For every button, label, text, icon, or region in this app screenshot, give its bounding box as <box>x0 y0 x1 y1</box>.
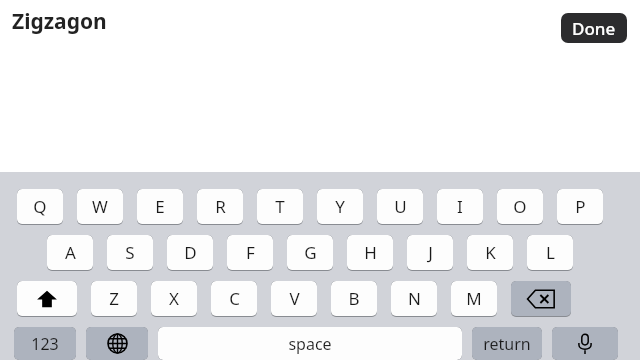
button[interactable]: R <box>197 189 243 225</box>
staticText: Y <box>335 195 345 218</box>
staticText: A <box>65 241 76 264</box>
staticText: J <box>428 241 433 264</box>
button[interactable]: F <box>227 235 273 271</box>
staticText: L <box>546 241 555 264</box>
staticText: M <box>466 287 482 310</box>
button[interactable]: U <box>377 189 423 225</box>
button[interactable]: Change keyboard <box>86 327 148 360</box>
button[interactable]: space <box>158 327 462 360</box>
button[interactable]: D <box>167 235 213 271</box>
button[interactable]: Shift <box>17 281 77 317</box>
staticText: P <box>575 195 586 218</box>
button[interactable]: return <box>472 327 542 360</box>
staticText: O <box>513 195 527 218</box>
button[interactable]: N <box>391 281 437 317</box>
button[interactable]: G <box>287 235 333 271</box>
staticText: space <box>288 333 332 355</box>
staticText: Done <box>572 17 616 40</box>
staticText: U <box>394 195 407 218</box>
staticText: 123 <box>31 333 59 355</box>
button[interactable]: O <box>497 189 543 225</box>
staticText: V <box>289 287 300 310</box>
staticText: H <box>364 241 377 264</box>
staticText: T <box>275 195 285 218</box>
staticText: Z <box>109 287 119 310</box>
staticText: S <box>125 241 135 264</box>
staticText: R <box>215 195 226 218</box>
staticText: return <box>483 333 531 355</box>
button[interactable]: A <box>47 235 93 271</box>
button[interactable]: X <box>151 281 197 317</box>
button[interactable]: B <box>331 281 377 317</box>
staticText: Zigzagon <box>12 7 107 36</box>
button[interactable]: 123 <box>14 327 76 360</box>
staticText: C <box>229 287 240 310</box>
staticText: I <box>457 195 463 218</box>
button[interactable]: E <box>137 189 183 225</box>
staticText: G <box>304 241 317 264</box>
button[interactable]: V <box>271 281 317 317</box>
staticText: X <box>169 287 179 310</box>
button[interactable]: Y <box>317 189 363 225</box>
staticText: K <box>485 241 496 264</box>
button[interactable]: J <box>407 235 453 271</box>
button[interactable]: T <box>257 189 303 225</box>
button[interactable]: S <box>107 235 153 271</box>
button[interactable]: Dictation <box>552 327 618 360</box>
button[interactable]: W <box>77 189 123 225</box>
button[interactable]: Backspace <box>511 281 571 317</box>
staticText: N <box>408 287 421 310</box>
button[interactable]: I <box>437 189 483 225</box>
staticText: W <box>92 195 108 218</box>
staticText: E <box>155 195 165 218</box>
staticText: D <box>184 241 197 264</box>
button[interactable]: L <box>527 235 573 271</box>
button[interactable]: K <box>467 235 513 271</box>
button[interactable]: Z <box>91 281 137 317</box>
button[interactable]: Done <box>561 13 627 43</box>
staticText: F <box>246 241 255 264</box>
staticText: B <box>348 287 360 310</box>
staticText: Q <box>33 195 47 218</box>
button[interactable]: C <box>211 281 257 317</box>
button[interactable]: P <box>557 189 603 225</box>
button[interactable]: Q <box>17 189 63 225</box>
button[interactable]: M <box>451 281 497 317</box>
button[interactable]: H <box>347 235 393 271</box>
